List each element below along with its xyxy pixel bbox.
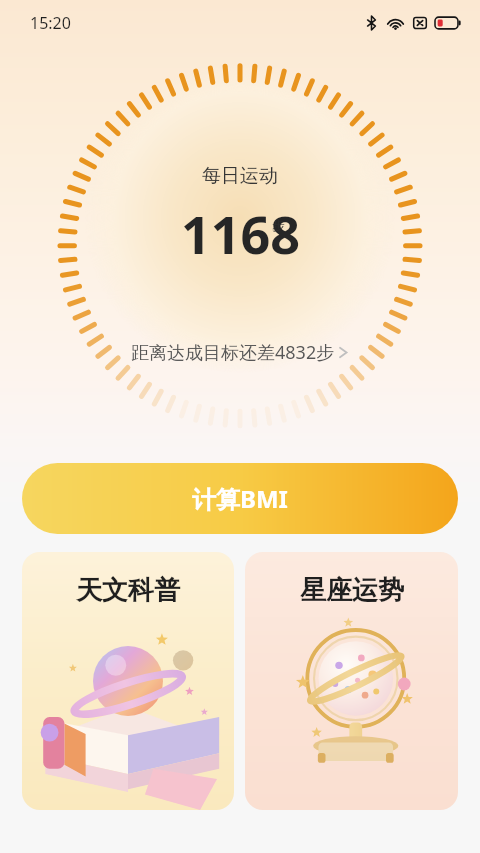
button[interactable]: 星座运势: [245, 552, 458, 810]
staticText: 步: [272, 217, 285, 233]
button[interactable]: 计算BMI: [22, 463, 458, 534]
staticText: 天文科普: [76, 574, 180, 607]
staticText: 距离达成目标还差4832步: [131, 340, 335, 365]
staticText: 计算BMI: [192, 482, 288, 515]
staticText: 15:20: [30, 12, 71, 34]
staticText: 1168: [181, 198, 300, 269]
staticText: 每日运动: [202, 164, 278, 188]
button[interactable]: 距离达成目标还差4832步: [0, 340, 480, 365]
button[interactable]: 天文科普: [22, 552, 234, 810]
staticText: 星座运势: [300, 574, 404, 607]
